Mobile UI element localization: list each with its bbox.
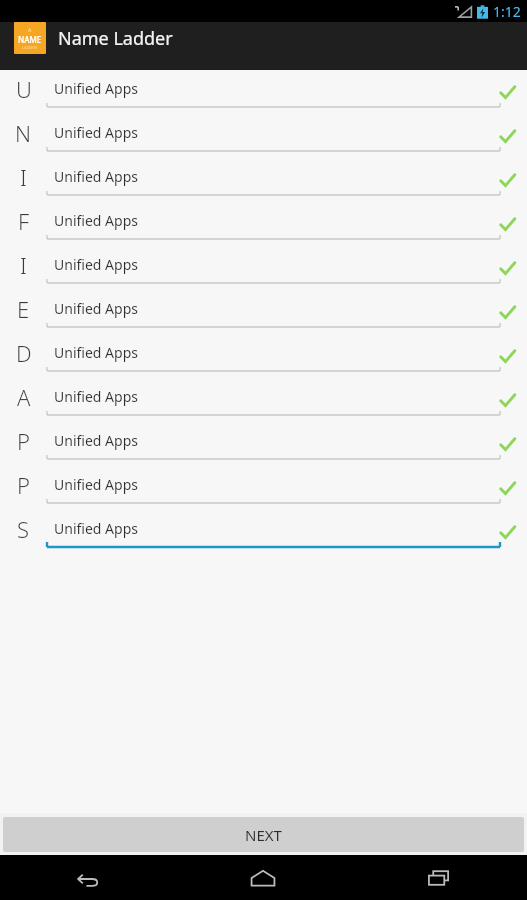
button[interactable]: S <box>0 510 527 554</box>
button[interactable]: D <box>0 334 527 378</box>
other: Valid <box>495 212 519 236</box>
staticText: Name Ladder <box>58 26 173 51</box>
other: Valid <box>495 168 519 192</box>
staticText: Unified Apps <box>54 431 138 450</box>
other: App icon <box>14 22 46 54</box>
staticText: Unified Apps <box>54 519 138 538</box>
staticText: D <box>16 338 32 368</box>
staticText: P <box>17 426 30 456</box>
button[interactable]: N <box>0 114 527 158</box>
other: Valid <box>495 388 519 412</box>
staticText: Unified Apps <box>54 255 138 274</box>
button[interactable]: F <box>0 202 527 246</box>
staticText: 1:12 <box>493 2 521 21</box>
staticText: Unified Apps <box>54 123 138 142</box>
other: Valid <box>495 520 519 544</box>
staticText: P <box>17 470 30 500</box>
button[interactable]: P <box>0 466 527 510</box>
staticText: Unified Apps <box>54 475 138 494</box>
staticText: S <box>17 514 30 544</box>
button[interactable]: E <box>0 290 527 334</box>
other: Valid <box>495 124 519 148</box>
button[interactable]: P <box>0 422 527 466</box>
staticText: Unified Apps <box>54 167 138 186</box>
staticText: NAME <box>18 34 42 45</box>
button[interactable]: Home <box>175 855 351 900</box>
other: Valid <box>495 432 519 456</box>
staticText: E <box>17 294 30 324</box>
button[interactable]: Back <box>0 855 175 900</box>
staticText: Unified Apps <box>54 211 138 230</box>
other: Valid <box>495 344 519 368</box>
button[interactable]: I <box>0 158 527 202</box>
staticText: A <box>28 27 32 34</box>
staticText: U <box>16 74 32 104</box>
other: Valid <box>495 300 519 324</box>
button[interactable]: NEXT <box>3 817 524 852</box>
button[interactable]: I <box>0 246 527 290</box>
other: Valid <box>495 80 519 104</box>
other: Valid <box>495 256 519 280</box>
staticText: I <box>20 250 27 280</box>
button[interactable]: A <box>0 378 527 422</box>
button[interactable]: U <box>0 70 527 114</box>
staticText: Unified Apps <box>54 299 138 318</box>
staticText: LADDER <box>22 45 38 50</box>
button[interactable]: Recent apps <box>351 855 527 900</box>
staticText: F <box>18 206 30 236</box>
staticText: NEXT <box>245 825 282 845</box>
staticText: Unified Apps <box>54 343 138 362</box>
staticText: I <box>20 162 27 192</box>
staticText: A <box>17 382 31 412</box>
staticText: Unified Apps <box>54 79 138 98</box>
staticText: Unified Apps <box>54 387 138 406</box>
staticText: N <box>15 118 32 148</box>
other: Valid <box>495 476 519 500</box>
